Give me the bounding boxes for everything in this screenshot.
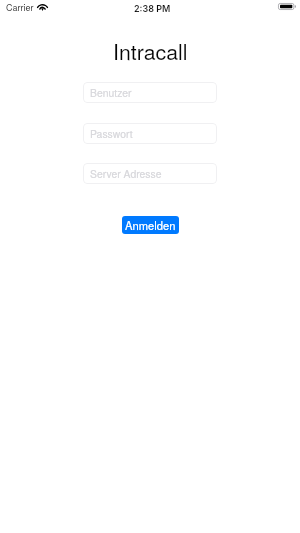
staticText: Carrier (6, 1, 34, 14)
staticText: Intracall (113, 36, 188, 67)
button[interactable]: Anmelden (122, 216, 179, 234)
other: Battery full (278, 3, 296, 10)
button[interactable]: Benutzer (83, 82, 217, 103)
button[interactable]: Server Adresse (83, 163, 217, 184)
other: Wi-Fi signal (38, 4, 47, 11)
staticText: Anmelden (125, 217, 176, 233)
staticText: 2:38 PM (134, 3, 171, 14)
staticText: Server Adresse (90, 166, 162, 181)
staticText: Passwort (90, 126, 133, 141)
button[interactable]: Passwort (83, 123, 217, 144)
staticText: Benutzer (90, 85, 132, 100)
